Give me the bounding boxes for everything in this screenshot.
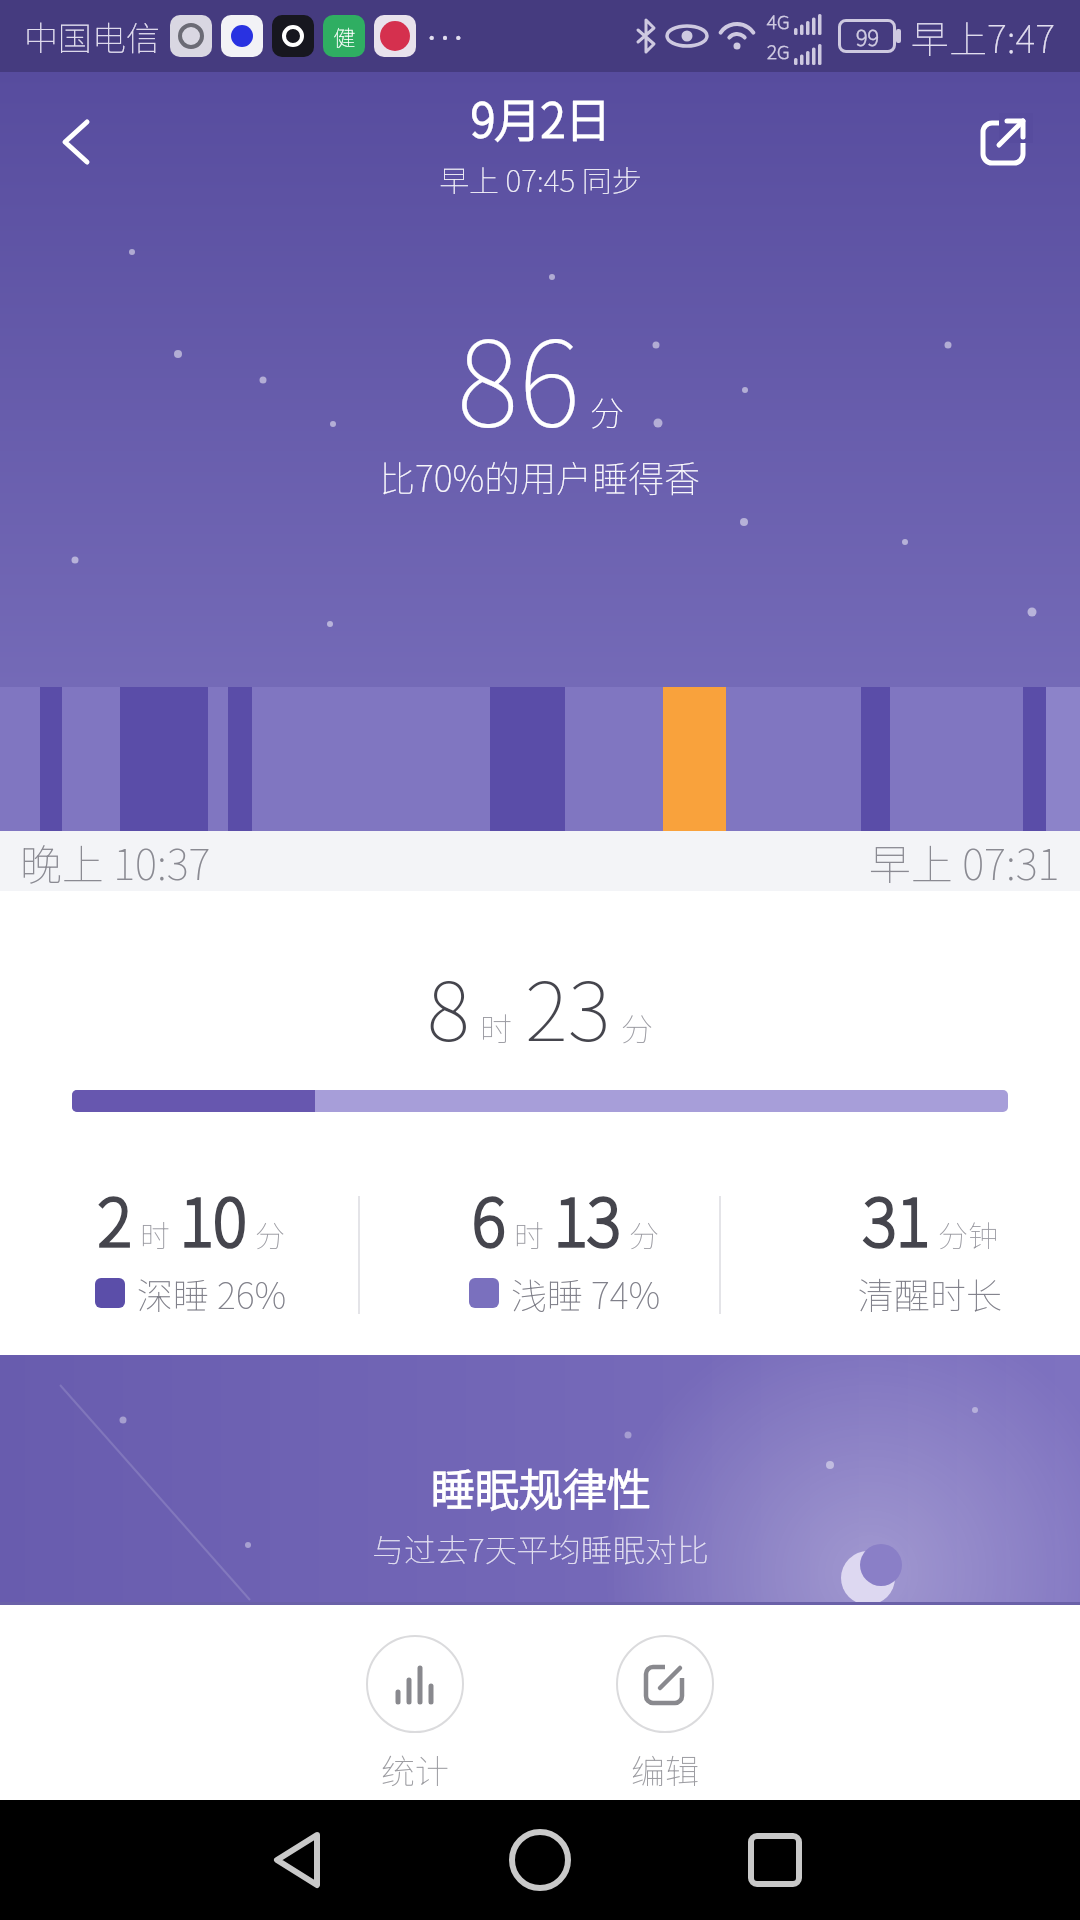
- staticText: 早上 07:31: [869, 831, 1060, 891]
- staticText: 2: [98, 1172, 132, 1265]
- button[interactable]: [695, 1800, 855, 1920]
- staticText: 9月2日: [471, 84, 611, 151]
- staticText: 10: [180, 1172, 247, 1265]
- staticText: 分钟: [938, 1212, 998, 1255]
- staticText: 统计: [381, 1745, 449, 1794]
- staticText: 6: [472, 1172, 506, 1265]
- staticText: 13: [554, 1172, 621, 1265]
- staticText: 比70%的用户睡得香: [379, 450, 701, 502]
- staticText: 86: [457, 289, 580, 460]
- staticText: 早上7:47: [911, 9, 1056, 64]
- staticText: 清醒时长: [858, 1267, 1003, 1319]
- staticText: 中国电信: [24, 12, 160, 61]
- staticText: ⋯: [425, 7, 465, 65]
- staticText: 13: [554, 1172, 621, 1265]
- staticText: 8: [427, 946, 470, 1065]
- staticText: 分: [590, 387, 624, 436]
- staticText: 6: [472, 1172, 506, 1265]
- staticText: 9月2日: [471, 84, 611, 151]
- staticText: 浅睡 74%: [511, 1267, 661, 1319]
- button[interactable]: 统计: [366, 1635, 464, 1794]
- button[interactable]: 睡眠规律性: [0, 1355, 1080, 1605]
- staticText: 深睡 26%: [137, 1267, 287, 1319]
- staticText: 睡眠规律性: [431, 1455, 651, 1519]
- staticText: 10: [180, 1172, 247, 1265]
- staticText: 分: [255, 1212, 285, 1255]
- staticText: 与过去7天平均睡眠对比: [372, 1525, 709, 1571]
- staticText: 分: [629, 1212, 659, 1255]
- staticText: 时: [480, 1004, 513, 1050]
- staticText: 23: [525, 946, 611, 1065]
- button[interactable]: 编辑: [616, 1635, 714, 1794]
- staticText: 时: [514, 1212, 544, 1255]
- staticText: 2: [98, 1172, 132, 1265]
- button[interactable]: [217, 1800, 377, 1920]
- button[interactable]: [968, 106, 1040, 178]
- staticText: 时: [140, 1212, 170, 1255]
- staticText: 分: [621, 1004, 654, 1050]
- staticText: 99: [856, 20, 879, 52]
- staticText: 31: [863, 1172, 930, 1265]
- staticText: 4G: [767, 7, 790, 35]
- staticText: 2G: [767, 37, 790, 65]
- staticText: 健: [333, 20, 356, 52]
- staticText: 早上 07:45 同步: [439, 157, 642, 200]
- button[interactable]: [460, 1800, 620, 1920]
- staticText: 31: [863, 1172, 930, 1265]
- staticText: 睡眠规律性: [431, 1455, 651, 1519]
- staticText: 编辑: [631, 1745, 699, 1794]
- staticText: 晚上 10:37: [20, 831, 211, 891]
- button[interactable]: [40, 106, 112, 178]
